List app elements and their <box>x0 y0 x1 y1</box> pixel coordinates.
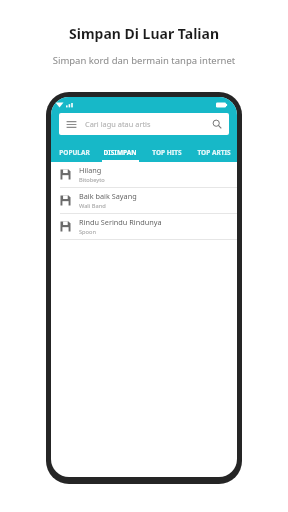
button[interactable]: Saved <box>51 188 237 213</box>
button[interactable]: Saved <box>51 162 237 187</box>
staticText: Bitobeyto <box>79 176 105 184</box>
button[interactable]: Saved <box>51 214 237 239</box>
button[interactable]: Menu <box>59 113 229 135</box>
staticText: Simpan Di Luar Talian <box>0 24 288 43</box>
other: Search <box>212 119 222 129</box>
button[interactable]: TOP HITS <box>143 143 190 162</box>
other: Saved <box>60 169 71 180</box>
staticText: Simpan kord dan bermain tanpa internet <box>0 54 288 67</box>
staticText: Hilang <box>79 165 102 175</box>
button[interactable]: TOP ARTIS <box>190 143 237 162</box>
staticText: Rindu Serindu Rindunya <box>79 217 162 227</box>
staticText: Cari lagu atau artis <box>85 119 212 129</box>
staticText: Wali Band <box>79 202 106 210</box>
staticText: TOP HITS <box>152 148 182 157</box>
staticText: DISIMPAN <box>103 148 137 157</box>
staticText: Baik baik Sayang <box>79 191 137 201</box>
other: Saved <box>60 195 71 206</box>
staticText: TOP ARTIS <box>197 148 231 157</box>
staticText: Spoon <box>79 228 97 236</box>
other: Saved <box>60 221 71 232</box>
other: Menu <box>66 119 77 130</box>
button[interactable]: DISIMPAN <box>97 143 143 162</box>
staticText: POPULAR <box>59 148 90 157</box>
button[interactable]: POPULAR <box>51 143 97 162</box>
